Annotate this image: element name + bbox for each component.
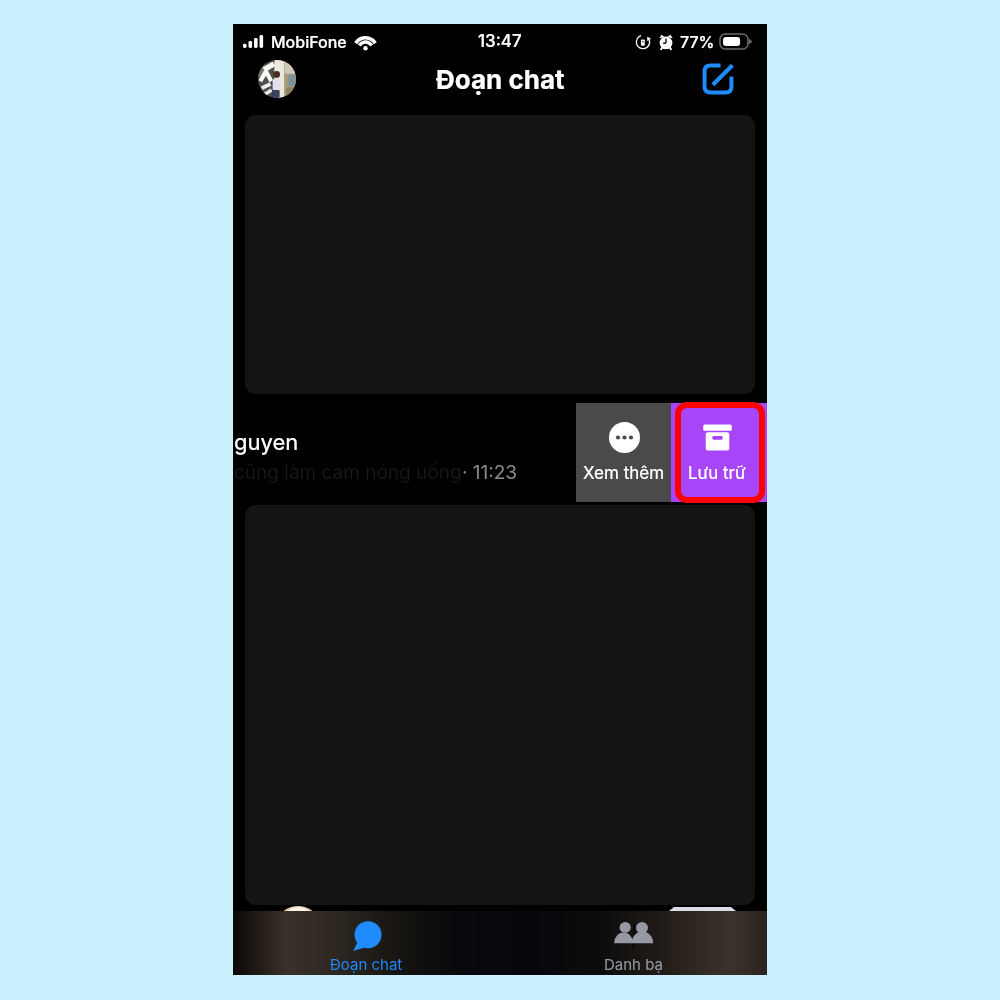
button[interactable]: New message: [700, 61, 736, 97]
button[interactable]: Danh bạ: [500, 911, 767, 975]
staticText: 13:47: [478, 31, 522, 52]
button[interactable]: Đoạn chat: [233, 911, 500, 975]
staticText: · 11:23: [462, 461, 518, 484]
button[interactable]: Lưu trữ: [671, 403, 767, 502]
staticText: MobiFone: [271, 32, 347, 51]
staticText: Lưu trữ: [688, 463, 746, 484]
staticText: Danh bạ: [604, 955, 663, 973]
staticText: Xem thêm: [583, 463, 665, 484]
staticText: Đoạn chat: [330, 955, 403, 973]
staticText: cũng làm cam nóng uống: [234, 461, 462, 484]
button[interactable]: Profile: [258, 60, 296, 98]
staticText: Đoạn chat: [436, 64, 565, 95]
staticText: 77%: [680, 32, 715, 51]
button[interactable]: Xem thêm: [576, 403, 671, 502]
staticText: guyen: [234, 429, 299, 456]
